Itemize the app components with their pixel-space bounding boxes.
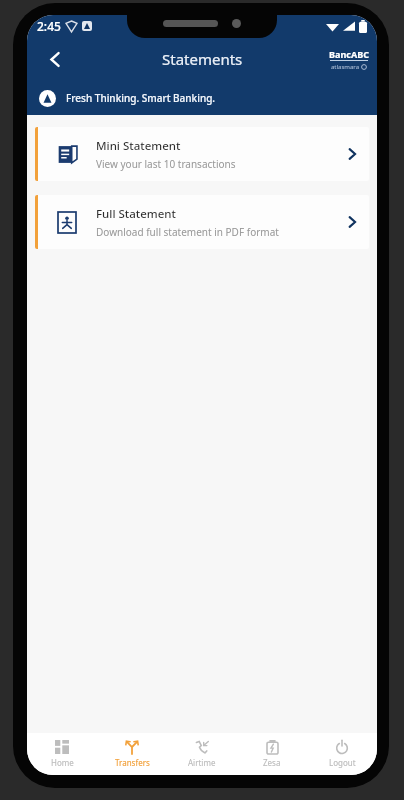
button[interactable]: Logout	[307, 733, 377, 775]
staticText: Logout	[329, 757, 356, 768]
button[interactable]: Transfers	[97, 733, 167, 775]
button[interactable]: Back	[37, 41, 73, 77]
staticText: ABC	[351, 48, 369, 60]
staticText: Full Statement	[96, 206, 176, 222]
staticText: atlasmara	[331, 63, 360, 71]
button[interactable]: Full Statement	[35, 195, 369, 249]
button[interactable]: Home	[27, 733, 97, 775]
staticText: View your last 10 transactions	[96, 157, 236, 171]
staticText: Zesa	[263, 757, 281, 768]
staticText: Transfers	[115, 757, 150, 768]
staticText: Home	[51, 757, 74, 768]
staticText: Mini Statement	[96, 138, 181, 154]
staticText: Download full statement in PDF format	[96, 225, 279, 239]
staticText: Fresh Thinking. Smart Banking.	[66, 91, 216, 105]
button[interactable]: Zesa	[237, 733, 307, 775]
staticText: 2:45	[37, 18, 61, 34]
staticText: Statements	[162, 49, 243, 69]
staticText: Airtime	[188, 757, 216, 768]
button[interactable]: Airtime	[167, 733, 237, 775]
button[interactable]: Mini Statement	[35, 127, 369, 181]
staticText: Banc	[329, 48, 351, 60]
